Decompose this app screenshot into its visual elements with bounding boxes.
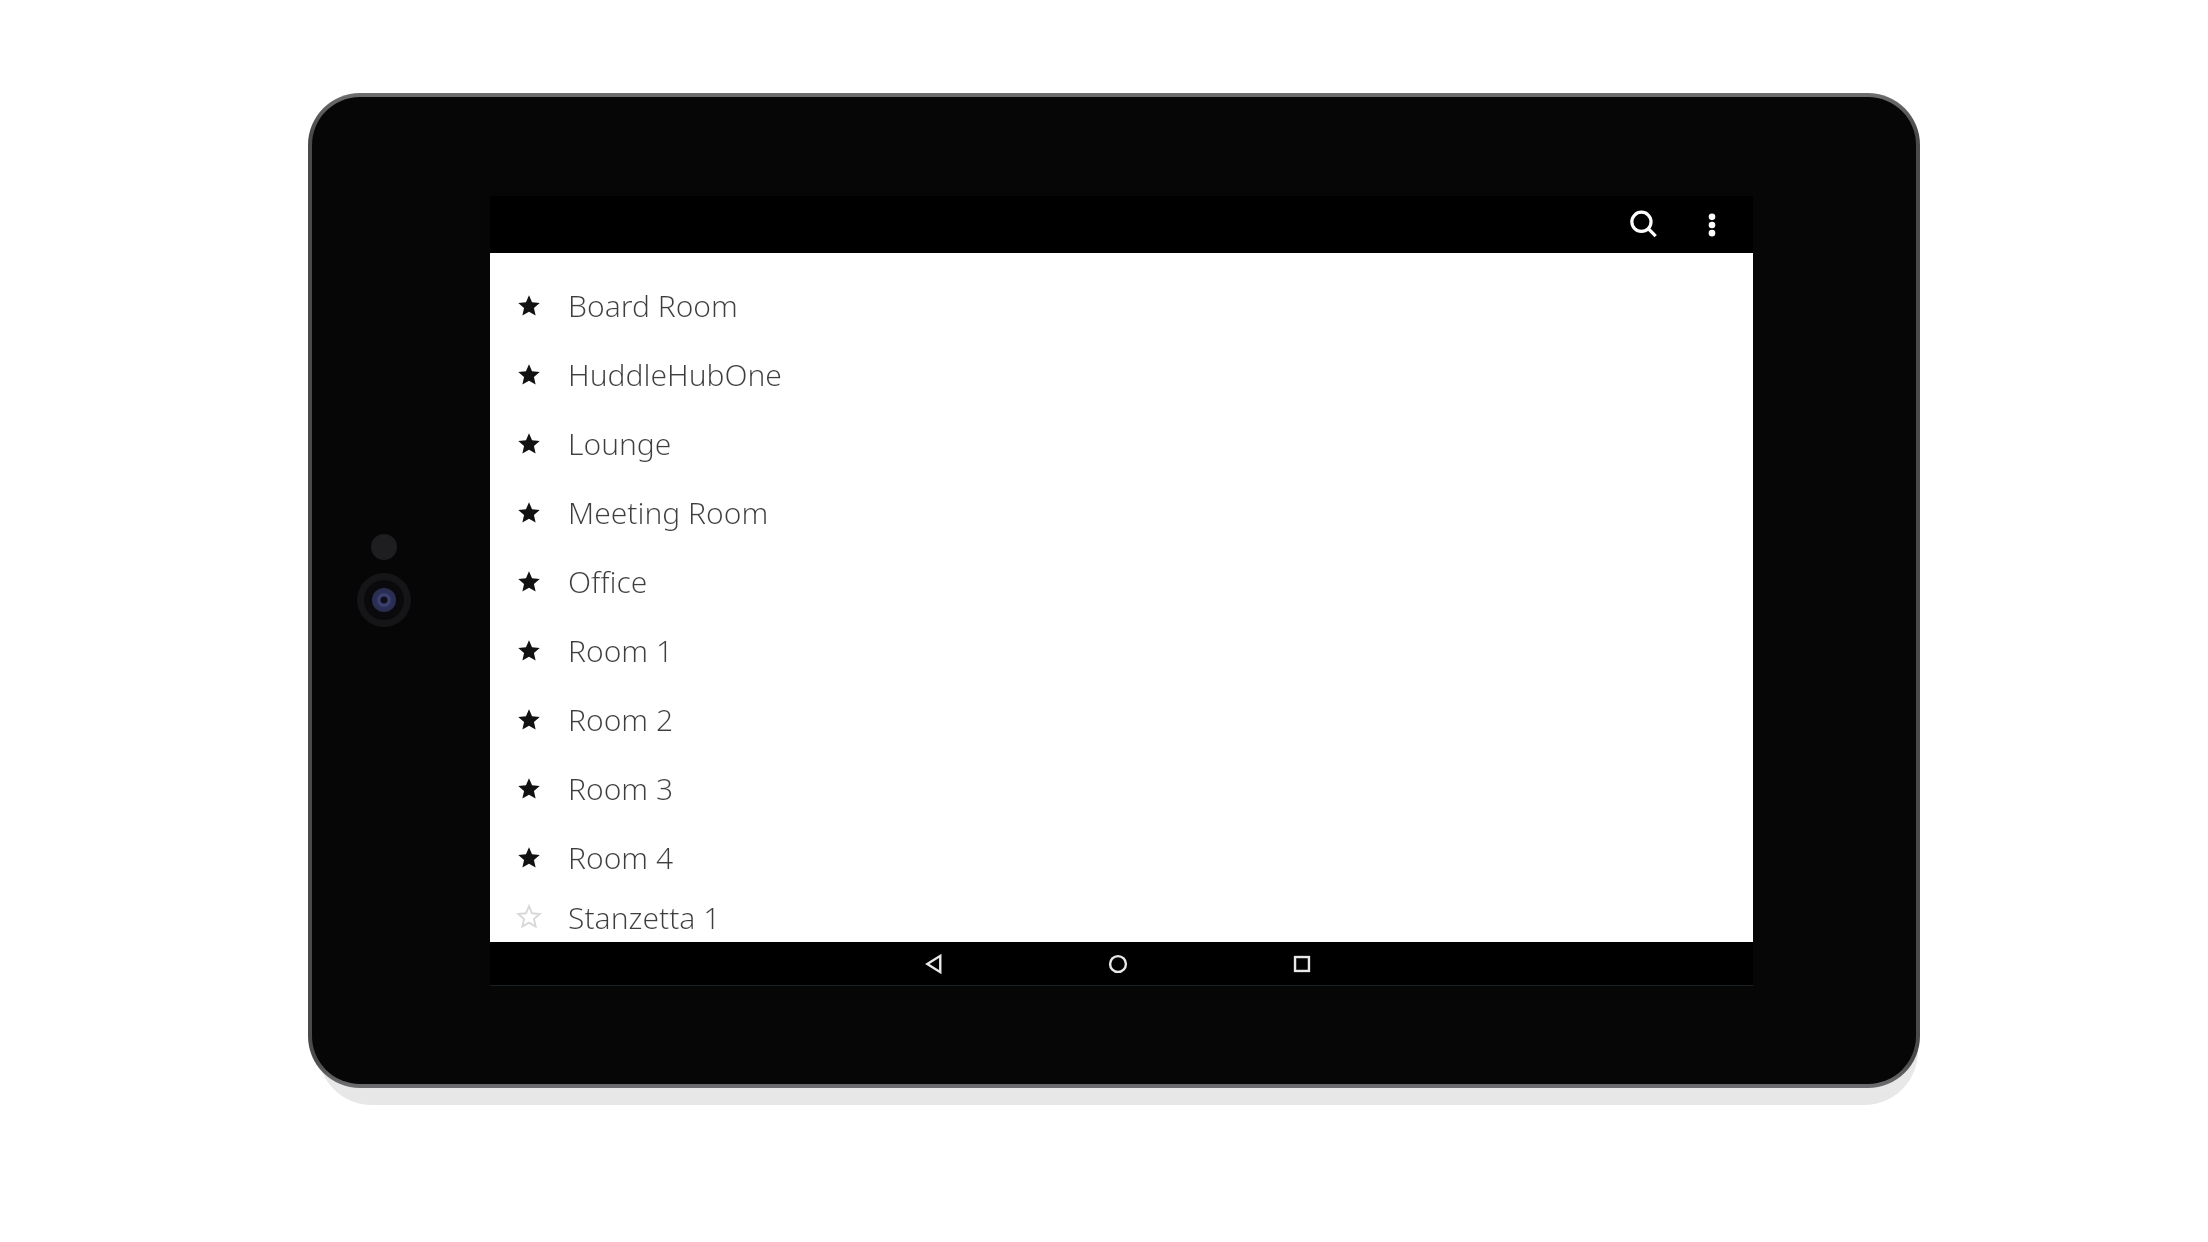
staticText: Room 3 bbox=[568, 768, 674, 809]
button[interactable]: More options bbox=[1682, 196, 1742, 253]
button[interactable]: Room 4 bbox=[490, 823, 1753, 892]
button[interactable]: Office bbox=[490, 547, 1753, 616]
button[interactable]: Lounge bbox=[490, 409, 1753, 478]
button[interactable]: Back bbox=[902, 942, 968, 986]
button[interactable]: Room 2 bbox=[490, 685, 1753, 754]
button[interactable]: Stanzetta 1 bbox=[490, 892, 1753, 942]
staticText: Stanzetta 1 bbox=[568, 897, 721, 938]
button[interactable]: Room 1 bbox=[490, 616, 1753, 685]
staticText: Lounge bbox=[568, 423, 672, 464]
button[interactable]: HuddleHubOne bbox=[490, 340, 1753, 409]
staticText: Room 1 bbox=[568, 630, 674, 671]
staticText: HuddleHubOne bbox=[568, 354, 782, 395]
button[interactable]: Recent apps bbox=[1269, 942, 1335, 986]
staticText: Board Room bbox=[568, 285, 738, 326]
button[interactable]: Home bbox=[1085, 942, 1151, 986]
button[interactable]: Board Room bbox=[490, 271, 1753, 340]
button[interactable]: Search bbox=[1614, 196, 1674, 253]
button[interactable]: Meeting Room bbox=[490, 478, 1753, 547]
staticText: Room 4 bbox=[568, 837, 674, 878]
button[interactable]: Room 3 bbox=[490, 754, 1753, 823]
staticText: Room 2 bbox=[568, 699, 674, 740]
staticText: Office bbox=[568, 561, 648, 602]
staticText: Meeting Room bbox=[568, 492, 769, 533]
